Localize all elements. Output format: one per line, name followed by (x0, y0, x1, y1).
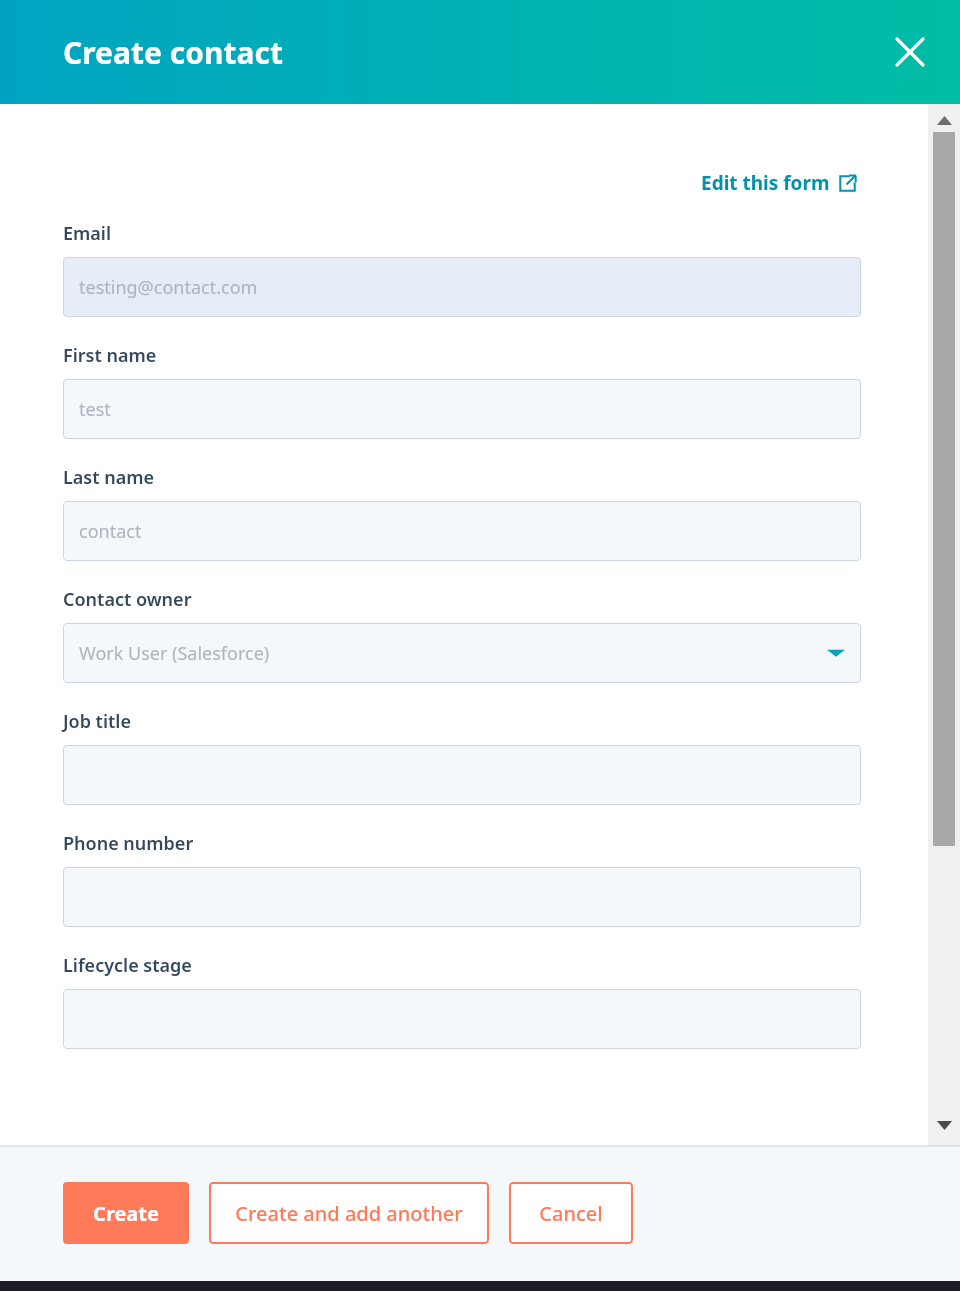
staticText: Create (93, 1200, 159, 1227)
staticText: Job title (63, 709, 131, 734)
staticText: testing@contact.com (79, 275, 258, 300)
button[interactable]: Edit this form (697, 166, 861, 200)
button[interactable]: Cancel (509, 1182, 633, 1244)
button[interactable]: Create and add another (209, 1182, 489, 1244)
button[interactable]: Create (63, 1182, 189, 1244)
button[interactable]: test (63, 379, 861, 439)
staticText: Create and add another (235, 1200, 463, 1227)
button[interactable] (63, 989, 861, 1049)
button[interactable]: Scroll down (936, 1117, 952, 1133)
button[interactable] (63, 867, 861, 927)
staticText: Work User (Salesforce) (79, 641, 270, 666)
staticText: Create contact (63, 32, 283, 73)
staticText: Email (63, 221, 112, 246)
staticText: Cancel (539, 1200, 603, 1227)
button[interactable]: Scroll up (936, 112, 952, 128)
staticText: Last name (63, 465, 155, 490)
staticText: First name (63, 343, 157, 368)
button[interactable] (63, 745, 861, 805)
staticText: Phone number (63, 831, 194, 856)
button[interactable]: contact (63, 501, 861, 561)
staticText: Contact owner (63, 587, 192, 612)
staticText: test (79, 397, 111, 422)
staticText: contact (79, 519, 142, 544)
staticText: Edit this form (701, 170, 830, 196)
button[interactable]: testing@contact.com (63, 257, 861, 317)
staticText: Lifecycle stage (63, 953, 192, 978)
button[interactable]: Work User (Salesforce) (63, 623, 861, 683)
button[interactable]: Close (885, 27, 935, 77)
